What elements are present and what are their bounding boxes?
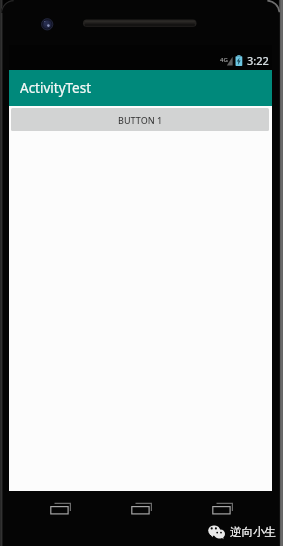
button[interactable]: Back bbox=[41, 499, 75, 521]
staticText: ActivityTest bbox=[20, 79, 92, 97]
button[interactable]: Home bbox=[122, 499, 156, 521]
button[interactable]: Recents bbox=[203, 499, 237, 521]
staticText: BUTTON 1 bbox=[118, 114, 163, 126]
staticText: 3:22 bbox=[247, 53, 269, 68]
button[interactable]: BUTTON 1 bbox=[11, 108, 269, 131]
staticText: 逆向小生 bbox=[230, 525, 276, 539]
staticText: 4G bbox=[220, 56, 228, 64]
